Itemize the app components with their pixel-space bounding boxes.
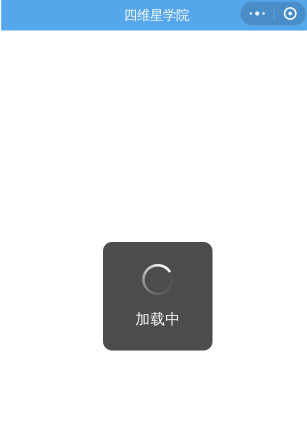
staticText: 四维星学院 (124, 7, 189, 24)
button[interactable]: More (241, 1, 274, 25)
staticText: 加载中 (135, 310, 180, 328)
button[interactable]: Close mini program (275, 1, 306, 25)
